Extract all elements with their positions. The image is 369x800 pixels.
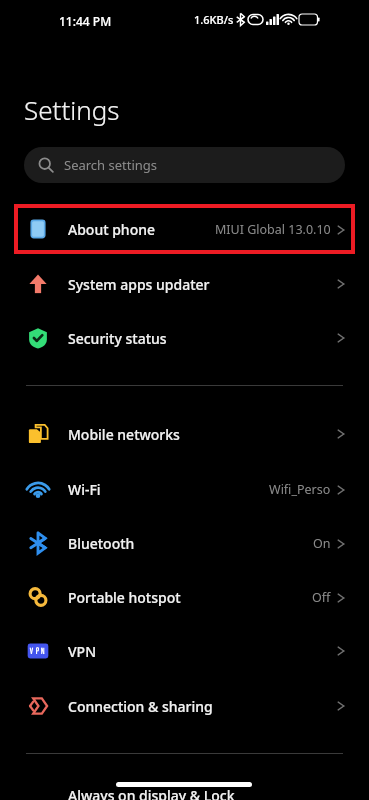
staticText: Bluetooth bbox=[68, 534, 135, 553]
staticText: About phone bbox=[68, 220, 156, 239]
staticText: Mobile networks bbox=[68, 425, 180, 444]
staticText: Connection & sharing bbox=[68, 697, 213, 716]
staticText: Off bbox=[312, 589, 331, 606]
button[interactable]: Search settings bbox=[24, 147, 345, 183]
button[interactable]: Always on display & Lock bbox=[0, 786, 369, 800]
button[interactable]: Security status bbox=[0, 314, 369, 362]
staticText: 11:44 PM bbox=[59, 13, 112, 29]
staticText: Wifi_Perso bbox=[269, 481, 331, 498]
button[interactable]: System apps updater bbox=[0, 260, 369, 308]
staticText: On bbox=[313, 535, 331, 552]
button[interactable]: Portable hotspot bbox=[0, 573, 369, 621]
staticText: MIUI Global 13.0.10 bbox=[215, 221, 331, 238]
staticText: 1.6KB/s bbox=[194, 12, 234, 27]
staticText: Security status bbox=[68, 329, 167, 348]
staticText: System apps updater bbox=[68, 275, 210, 294]
staticText: Wi-Fi bbox=[68, 480, 101, 499]
staticText: Always on display & Lock bbox=[68, 786, 235, 800]
staticText: Portable hotspot bbox=[68, 588, 181, 607]
staticText: Search settings bbox=[64, 156, 158, 174]
staticText: VPN bbox=[68, 642, 97, 661]
button[interactable]: Bluetooth bbox=[0, 519, 369, 567]
button[interactable]: Wi-Fi bbox=[0, 465, 369, 513]
button[interactable]: VPN bbox=[0, 627, 369, 675]
button[interactable]: About phone bbox=[0, 205, 369, 253]
staticText: Settings bbox=[24, 92, 120, 127]
button[interactable]: Mobile networks bbox=[0, 410, 369, 458]
button[interactable]: Connection & sharing bbox=[0, 682, 369, 730]
